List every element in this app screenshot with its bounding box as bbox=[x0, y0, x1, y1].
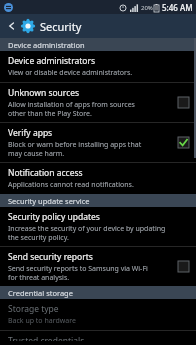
button[interactable]: Unchecked bbox=[177, 96, 190, 109]
button[interactable]: Device administrators bbox=[0, 51, 196, 82]
staticText: Device administration bbox=[8, 40, 85, 50]
staticText: Security update service bbox=[8, 196, 90, 206]
staticText: Security policy updates bbox=[8, 211, 100, 223]
staticText: Increase the security of your device by … bbox=[8, 224, 166, 242]
button[interactable]: Security policy updates bbox=[0, 207, 196, 246]
staticText: Storage type bbox=[8, 303, 59, 315]
staticText: 20% bbox=[141, 4, 153, 12]
button[interactable]: Verify apps bbox=[0, 123, 196, 162]
staticText: Allow installation of apps from sources … bbox=[8, 100, 135, 118]
button[interactable]: Send security reports bbox=[0, 247, 196, 286]
staticText: Applications cannot read notifications. bbox=[8, 180, 134, 190]
staticText: Security bbox=[40, 19, 82, 34]
staticText: View or disable device administrators. bbox=[8, 68, 133, 78]
staticText: Credential storage bbox=[8, 288, 73, 298]
button[interactable]: Unknown sources bbox=[0, 83, 196, 122]
button[interactable]: Checked bbox=[177, 136, 190, 149]
staticText: Send security reports to Samsung via Wi-… bbox=[8, 264, 148, 282]
staticText: Send security reports bbox=[8, 251, 93, 263]
staticText: Block or warn before installing apps tha… bbox=[8, 140, 142, 158]
staticText: Back up to hardware bbox=[8, 316, 76, 326]
button[interactable]: Back bbox=[0, 14, 196, 38]
staticText: Notification access bbox=[8, 167, 83, 179]
staticText: Trusted credentials bbox=[8, 335, 85, 341]
staticText: Unknown sources bbox=[8, 87, 80, 99]
staticText: Verify apps bbox=[8, 127, 53, 139]
staticText: Device administrators bbox=[8, 55, 96, 67]
button[interactable]: Back bbox=[5, 19, 19, 33]
button[interactable]: Notification access bbox=[0, 163, 196, 194]
button[interactable]: Storage type bbox=[0, 299, 196, 330]
button[interactable]: Trusted credentials bbox=[0, 331, 196, 345]
button[interactable]: Unchecked bbox=[177, 260, 190, 273]
staticText: 5:46 AM bbox=[162, 2, 193, 13]
